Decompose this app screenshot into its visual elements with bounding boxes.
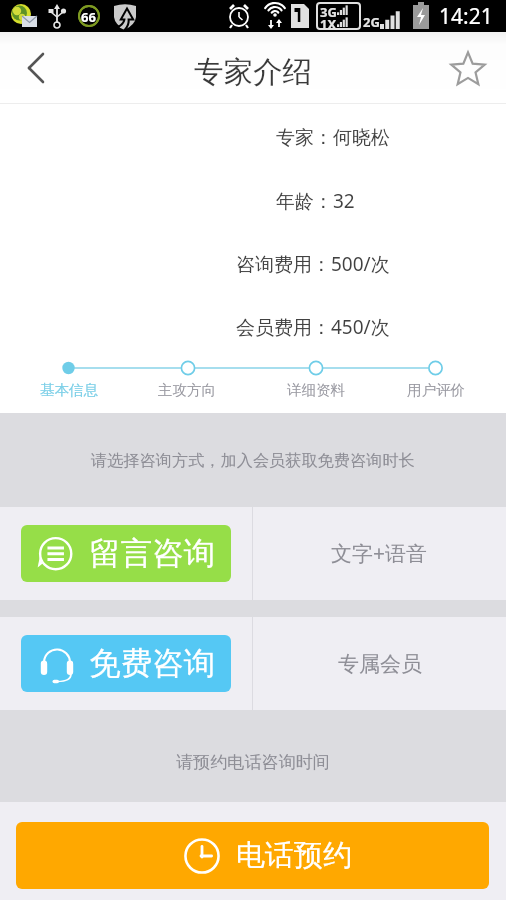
staticText: 年龄：32 xyxy=(276,188,355,214)
staticText: 用户评价 xyxy=(407,381,465,399)
staticText: 专属会员 xyxy=(338,651,422,677)
staticText: 66 xyxy=(81,8,96,26)
button[interactable]: 留言咨询 xyxy=(0,507,252,600)
staticText: 会员费用：450/次 xyxy=(236,314,390,340)
staticText: 文字+语音 xyxy=(331,539,428,568)
staticText: 主攻方向 xyxy=(158,381,216,399)
button[interactable]: Favorite xyxy=(434,32,506,104)
button[interactable]: 免费咨询 xyxy=(0,617,252,710)
button[interactable]: 专属会员 xyxy=(253,617,506,710)
staticText: 14:21 xyxy=(439,2,493,31)
button[interactable]: 电话预约 xyxy=(16,822,489,889)
staticText: 请选择咨询方式，加入会员获取免费咨询时长 xyxy=(91,450,415,470)
staticText: 咨询费用：500/次 xyxy=(236,251,390,277)
staticText: 详细资料 xyxy=(287,381,345,399)
button[interactable]: Back xyxy=(0,32,72,104)
button[interactable]: 文字+语音 xyxy=(253,507,506,600)
staticText: 请预约电话咨询时间 xyxy=(176,752,330,774)
staticText: 电话预约 xyxy=(236,837,352,874)
staticText: 2G xyxy=(363,13,380,31)
staticText: 留言咨询 xyxy=(89,534,215,574)
staticText: 专家：何晓松 xyxy=(276,126,390,150)
staticText: 基本信息 xyxy=(40,381,98,399)
staticText: 专家介绍 xyxy=(194,54,312,91)
staticText: 1X xyxy=(320,15,337,33)
staticText: 3G xyxy=(320,3,337,21)
staticText: 免费咨询 xyxy=(89,644,215,684)
